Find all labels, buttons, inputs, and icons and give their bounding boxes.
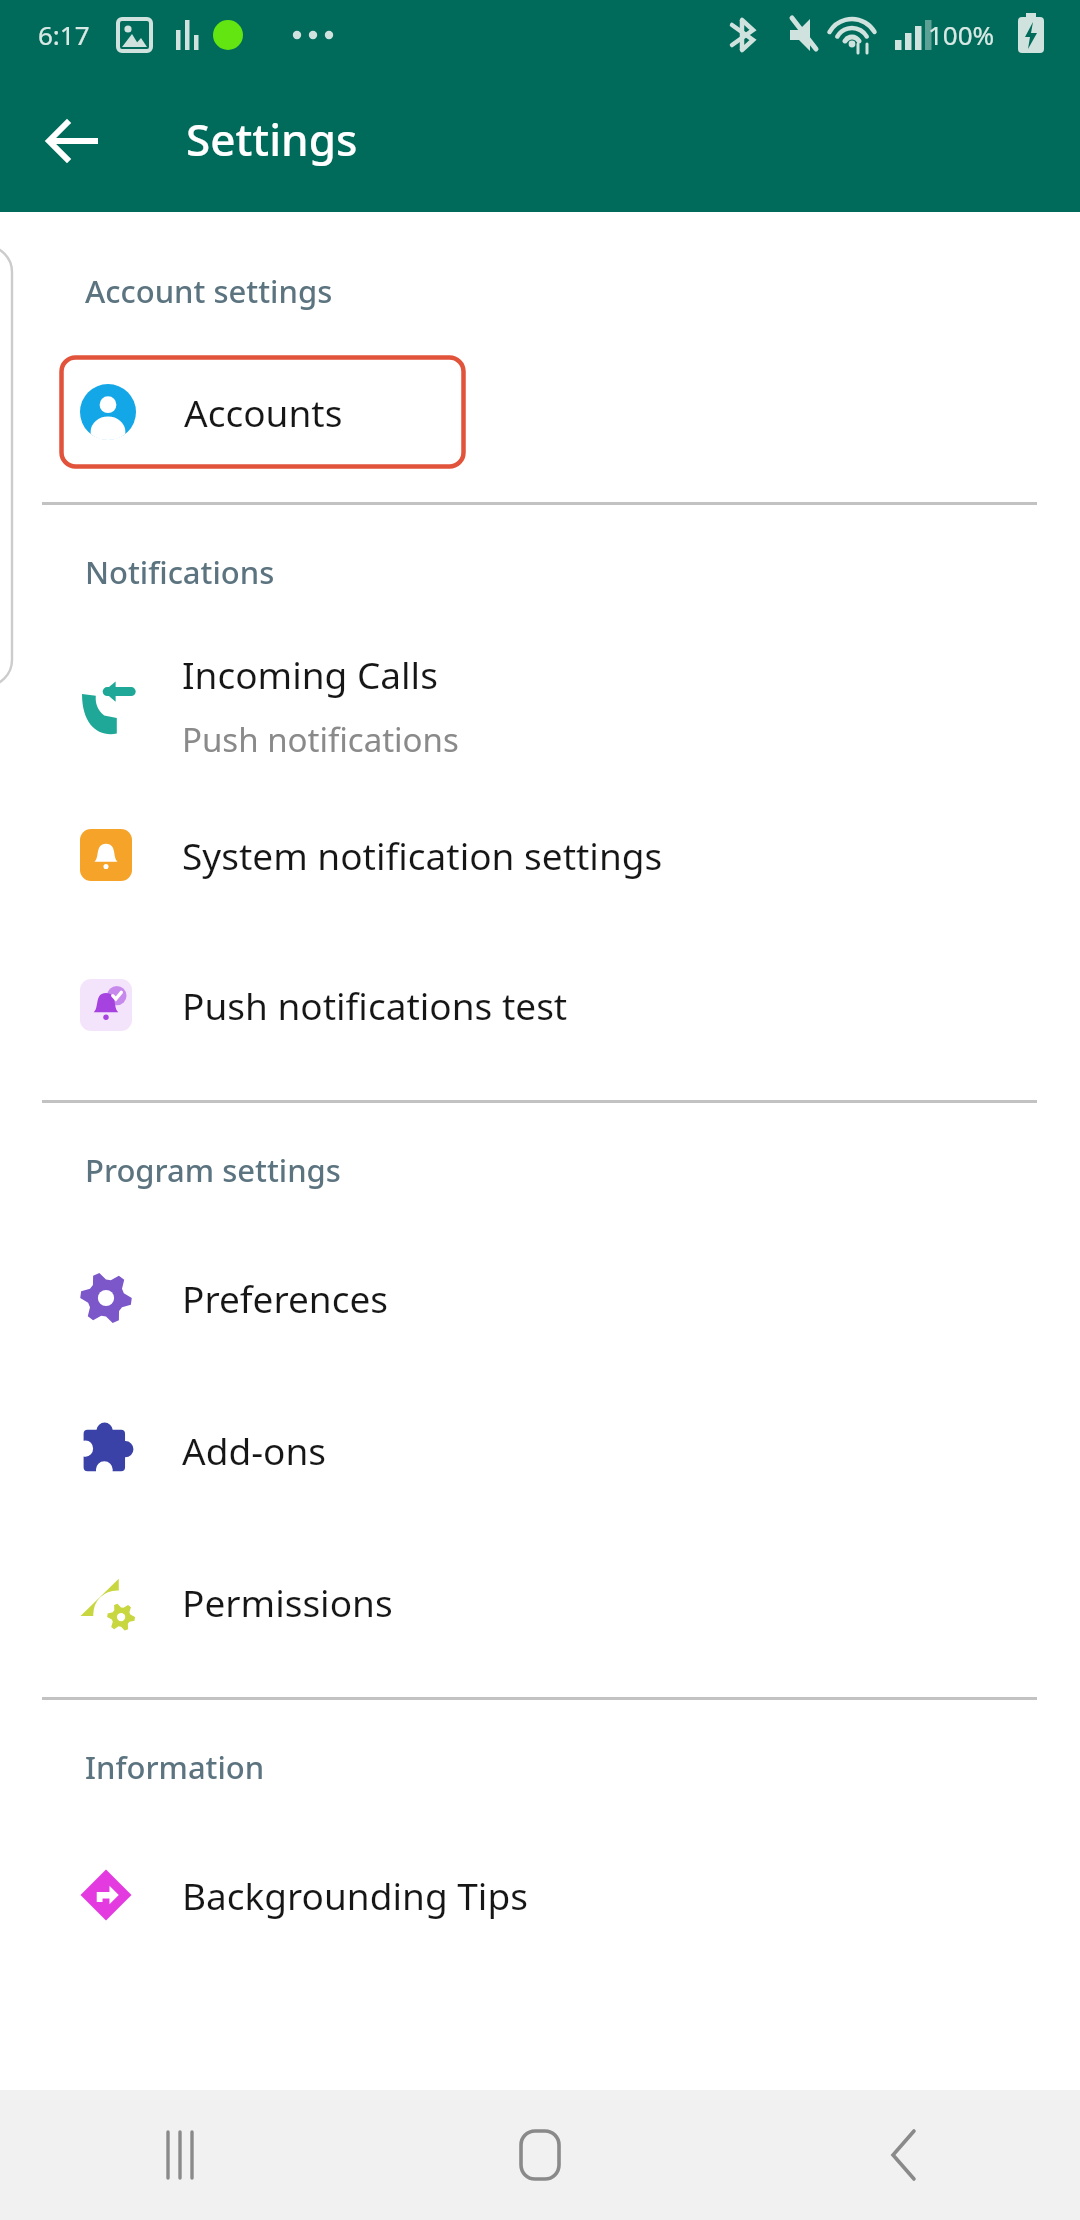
button[interactable]: Recent apps [0, 2090, 360, 2220]
staticText: Information [85, 1746, 265, 1788]
button[interactable]: Incoming Calls [0, 639, 1080, 772]
staticText: Permissions [182, 1577, 393, 1627]
staticText: Accounts [184, 387, 343, 437]
button[interactable]: Accounts [60, 356, 465, 468]
button[interactable]: Back [34, 101, 114, 181]
staticText: Backgrounding Tips [182, 1870, 528, 1920]
staticText: Settings [186, 109, 358, 169]
staticText: Incoming Calls [182, 649, 438, 699]
staticText: Push notifications [182, 717, 459, 762]
button[interactable]: Add-ons [0, 1395, 1080, 1505]
button[interactable]: System notification settings [0, 800, 1080, 910]
staticText: Push notifications test [182, 980, 568, 1030]
button[interactable]: Back [720, 2090, 1080, 2220]
staticText: Preferences [182, 1273, 389, 1323]
staticText: 100% [928, 17, 995, 52]
button[interactable]: Backgrounding Tips [0, 1840, 1080, 1950]
staticText: Add-ons [182, 1425, 327, 1475]
button[interactable]: Push notifications test [0, 950, 1080, 1060]
staticText: Account settings [85, 270, 333, 312]
staticText: Notifications [85, 551, 275, 593]
staticText: 6:17 [38, 17, 90, 52]
button[interactable]: Preferences [0, 1243, 1080, 1353]
staticText: System notification settings [182, 830, 663, 880]
staticText: Program settings [85, 1149, 341, 1191]
button[interactable]: Home [360, 2090, 720, 2220]
button[interactable]: Permissions [0, 1547, 1080, 1657]
